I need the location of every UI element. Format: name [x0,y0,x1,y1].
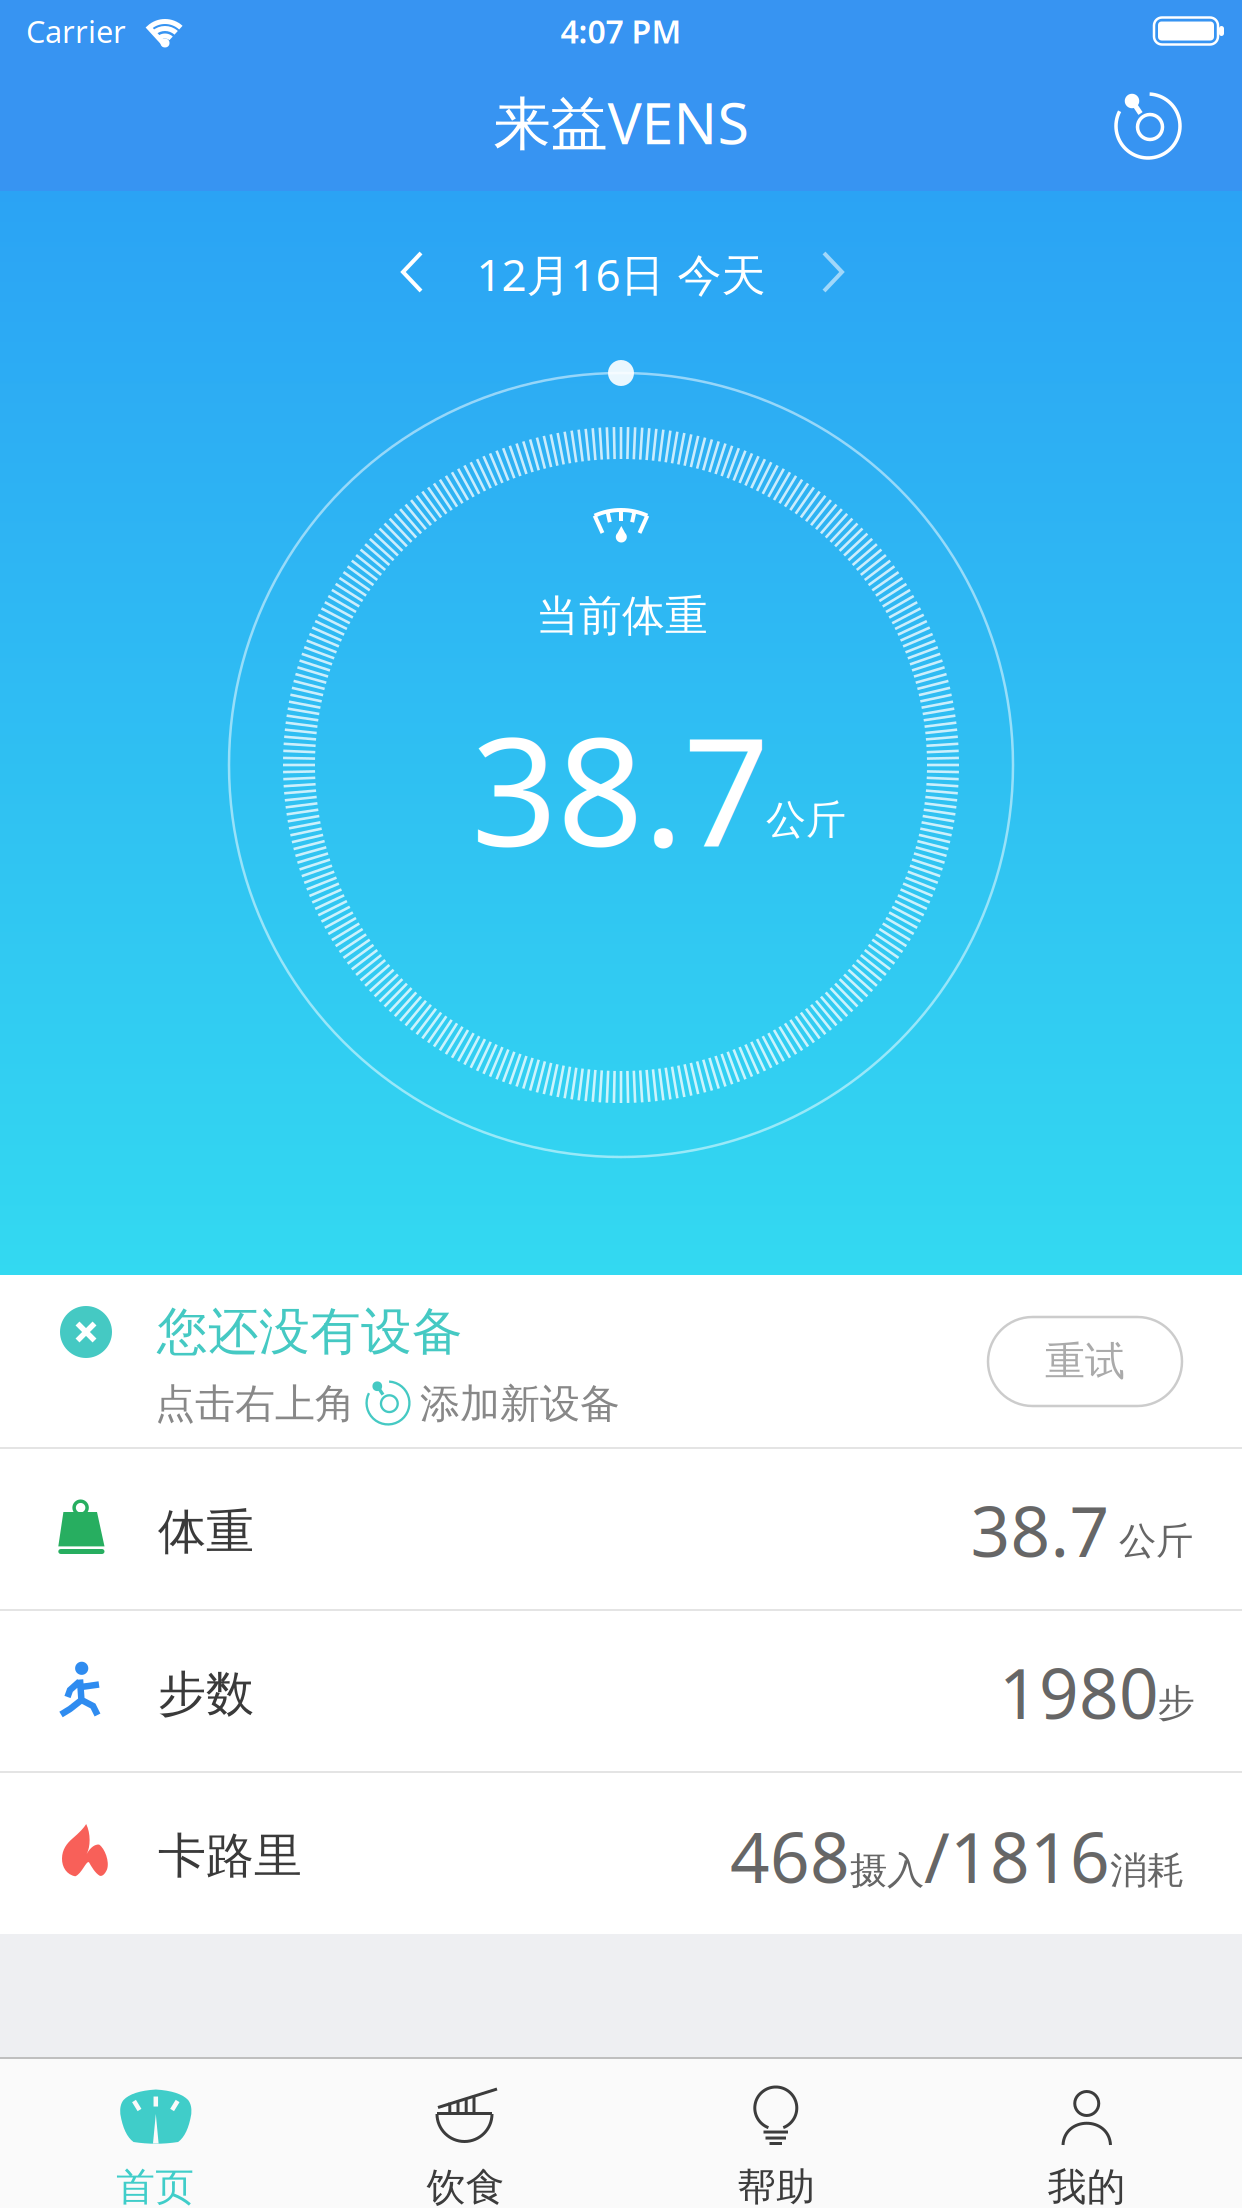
staticText: 公斤 [1119,1518,1193,1564]
staticText: 468 [730,1810,850,1902]
staticText: / [924,1810,950,1902]
button[interactable]: 帮助 [621,2057,931,2208]
staticText: 4:07 PM [560,10,681,52]
button[interactable]: 饮食 [310,2057,621,2208]
staticText: Carrier [26,11,126,51]
button[interactable]: 后一天 [803,237,863,307]
button[interactable]: 体重 [0,1448,1242,1610]
button[interactable]: 重试 [988,1317,1182,1406]
staticText: 1980 [999,1646,1159,1738]
staticText: 我的 [1048,2163,1126,2208]
staticText: 摄入 [850,1847,924,1893]
staticText: 重试 [1045,1337,1125,1386]
staticText: 首页 [116,2163,194,2208]
staticText: 38.7 [471,688,769,888]
staticText: 当前体重 [536,590,708,642]
staticText: 您还没有设备 [157,1301,463,1363]
button[interactable]: 我的 [931,2057,1242,2208]
staticText: 体重 [158,1502,254,1561]
staticText: 帮助 [737,2163,815,2208]
button[interactable]: 卡路里 [0,1772,1242,1934]
staticText: 卡路里 [158,1826,302,1885]
staticText: 饮食 [427,2163,505,2208]
button[interactable]: 添加设备 [1108,86,1188,166]
staticText: 消耗 [1110,1847,1184,1893]
staticText: 点击右上角 [155,1379,355,1428]
staticText: 步 [1157,1680,1194,1726]
button[interactable]: 步数 [0,1610,1242,1772]
staticText: 来益VENS [493,84,748,160]
button[interactable]: 前一天 [382,237,442,307]
staticText: 38.7 [970,1484,1109,1576]
staticText: 步数 [158,1664,254,1723]
staticText: 1816 [950,1810,1110,1902]
staticText: 添加新设备 [420,1379,620,1428]
staticText: 12月16日 今天 [476,245,765,303]
button[interactable]: 首页 [0,2057,310,2208]
staticText: 公斤 [766,795,846,844]
